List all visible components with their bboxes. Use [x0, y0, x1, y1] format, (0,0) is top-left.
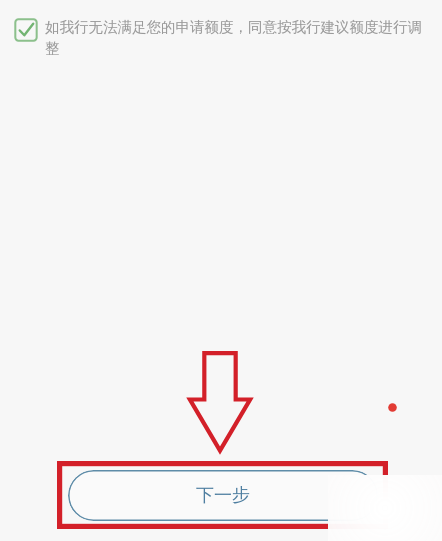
button[interactable]: Agree checkbox, checked — [14, 18, 430, 57]
other: Agree checkbox, checked — [14, 18, 38, 42]
staticText: 下一步 — [196, 484, 250, 507]
staticText: 如我行无法满足您的申请额度，同意按我行建议额度进行调整 — [45, 18, 430, 57]
button[interactable]: 下一步 — [68, 470, 378, 521]
